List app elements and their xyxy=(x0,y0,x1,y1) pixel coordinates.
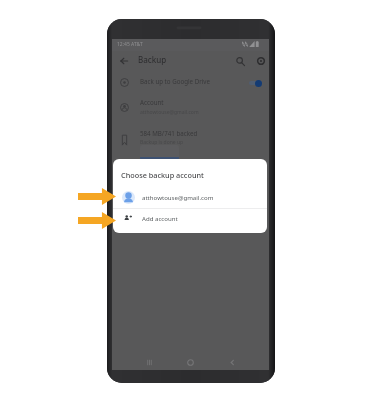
button[interactable]: Home xyxy=(183,355,197,369)
staticText: 584 MB/741 backed xyxy=(140,129,198,137)
button[interactable]: Setting xyxy=(116,99,132,115)
button[interactable]: Setting xyxy=(116,131,132,147)
button[interactable] xyxy=(140,145,179,160)
staticText: Backup xyxy=(138,54,167,65)
staticText: atthowtouse@gmail.com xyxy=(142,193,214,201)
button[interactable]: atthowtouse@gmail.com xyxy=(113,186,267,207)
button[interactable]: Back up to Google Drive toggle xyxy=(249,80,262,87)
staticText: Account xyxy=(140,98,164,106)
staticText: Back up to Google Drive xyxy=(140,77,210,85)
button[interactable]: Setting xyxy=(116,74,132,90)
staticText: Backup is done up xyxy=(140,139,184,146)
staticText: 12:45 AT&T xyxy=(117,41,143,48)
button[interactable]: Back xyxy=(225,355,239,369)
staticText: Choose backup account xyxy=(121,170,204,180)
button[interactable]: Recent apps xyxy=(142,355,156,369)
staticText: atthowtouse@gmail.com xyxy=(140,109,199,116)
button[interactable]: Search xyxy=(233,54,247,68)
button[interactable]: Help xyxy=(254,54,268,68)
button[interactable]: Navigate up xyxy=(116,53,132,69)
staticText: Add account xyxy=(142,214,178,222)
button[interactable]: Add account xyxy=(113,209,267,231)
